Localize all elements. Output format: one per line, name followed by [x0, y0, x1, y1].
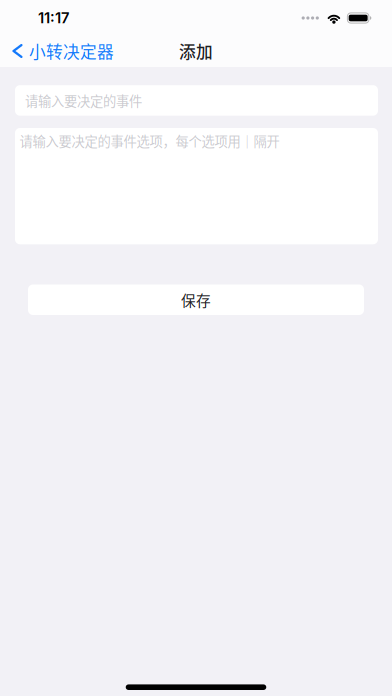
button[interactable]: 请输入要决定的事件选项，每个选项用｜隔开 [15, 128, 378, 244]
staticText: 添加 [179, 39, 213, 63]
staticText: 请输入要决定的事件 [25, 91, 142, 110]
button[interactable]: 请输入要决定的事件 [15, 85, 378, 116]
staticText: 小转决定器 [29, 39, 114, 63]
staticText: 保存 [181, 289, 211, 310]
button[interactable]: 保存 [28, 284, 364, 315]
button[interactable]: 小转决定器 [0, 33, 124, 69]
staticText: 11:17 [38, 9, 69, 27]
staticText: 请输入要决定的事件选项，每个选项用｜隔开 [19, 131, 279, 150]
